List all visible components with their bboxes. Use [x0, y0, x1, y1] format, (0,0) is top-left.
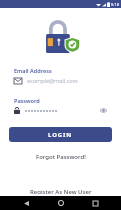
button[interactable]: Home [52, 196, 70, 210]
button[interactable]: Password [8, 93, 113, 118]
staticText: Email Address [14, 67, 52, 74]
other: Secure login [39, 18, 83, 56]
staticText: example@mail.com [27, 77, 108, 84]
button[interactable]: Show password [99, 107, 108, 114]
button[interactable]: Recents [86, 196, 104, 210]
staticText: Register As New User [30, 188, 92, 194]
button[interactable]: Forgot Password! [30, 151, 92, 163]
staticText: 5:18 [111, 2, 119, 7]
button[interactable]: Email Address [8, 63, 113, 88]
staticText: LOGIN [48, 131, 73, 139]
button[interactable]: Register As New User [24, 186, 98, 196]
staticText: Forgot Password! [36, 153, 86, 161]
staticText: Password [14, 97, 40, 104]
button[interactable]: LOGIN [9, 127, 112, 142]
button[interactable]: Back [17, 196, 35, 210]
